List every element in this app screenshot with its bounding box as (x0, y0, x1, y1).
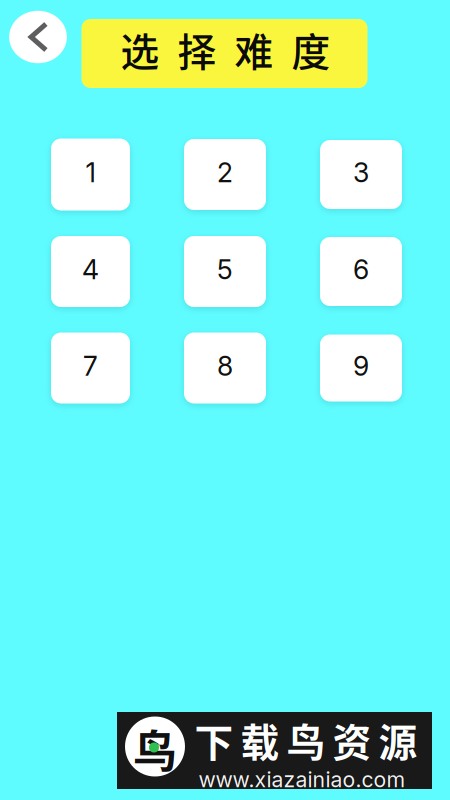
staticText: 2 (217, 156, 233, 189)
staticText: 5 (217, 253, 233, 286)
staticText: 9 (353, 350, 369, 382)
button[interactable]: 2 (184, 139, 266, 210)
staticText: 下载鸟资源 (194, 712, 417, 768)
button[interactable]: 7 (51, 332, 130, 403)
button[interactable]: 9 (320, 334, 402, 401)
button[interactable]: 1 (51, 138, 130, 210)
staticText: 选择难度 (120, 21, 330, 77)
button[interactable]: 3 (320, 140, 402, 209)
button[interactable]: 4 (51, 236, 130, 307)
staticText: 6 (353, 253, 369, 286)
button[interactable]: 5 (184, 236, 266, 307)
staticText: 7 (83, 350, 98, 382)
staticText: 鸟 (133, 717, 177, 780)
staticText: 4 (82, 253, 99, 286)
button[interactable]: 8 (184, 332, 266, 403)
button[interactable]: 6 (320, 237, 402, 306)
staticText: 1 (85, 156, 95, 189)
button[interactable]: Back (6, 8, 70, 66)
staticText: 8 (217, 350, 233, 382)
staticText: 3 (353, 156, 369, 189)
staticText: www.xiazainiao.com (198, 767, 405, 792)
